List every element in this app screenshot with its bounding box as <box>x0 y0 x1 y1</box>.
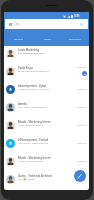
staticText: 10:20 PM <box>77 178 87 181</box>
staticText: Misaki - Marketing Intern <box>18 120 51 124</box>
staticText: You: http://media.tenor.co <box>18 105 48 108</box>
staticText: Paula Rojas <box>18 66 33 70</box>
staticText: 10:20 PM <box>77 142 87 145</box>
staticText: 10:20 PM <box>77 66 87 69</box>
staticText: You: Hello! I need some up <box>18 141 48 144</box>
staticText: CHATS <box>44 38 51 41</box>
staticText: Quinn - Technical Architect <box>18 174 53 178</box>
button[interactable]: #development - Zybar <box>4 80 89 98</box>
button[interactable]: Compose new message <box>74 170 86 182</box>
button[interactable]: Menu <box>5 19 88 29</box>
button[interactable]: Amelia <box>4 98 89 116</box>
staticText: #Development - Forked <box>18 138 49 142</box>
button[interactable]: Misaki - Marketing Intern <box>4 152 89 170</box>
staticText: Lewis Marketing <box>18 48 40 52</box>
staticText: You: 🖼 Image <box>18 177 35 180</box>
button[interactable]: #Development - Forked <box>4 134 89 152</box>
button[interactable]: MY PINS <box>4 29 33 46</box>
staticText: In the upcoming product la <box>18 69 49 72</box>
staticText: Misaki - Marketing Intern <box>18 156 51 160</box>
staticText: CHANNELS <box>69 38 81 41</box>
staticText: Has invited you to chat <box>18 51 44 54</box>
staticText: 10:20 PM <box>77 124 87 127</box>
button[interactable]: CHATS <box>33 29 61 46</box>
staticText: So far the best feature <box>18 123 44 126</box>
staticText: #development - Zybar <box>18 84 47 88</box>
button[interactable]: Paula Rojas <box>4 62 89 80</box>
button[interactable]: CHANNELS <box>61 29 89 46</box>
staticText: 10:20 PM <box>77 106 87 109</box>
staticText: 9:30 <box>74 14 80 18</box>
button[interactable]: Misaki - Marketing Intern <box>4 116 89 134</box>
staticText: So far the best feature <box>18 159 44 162</box>
staticText: 10:20 PM <box>77 88 87 91</box>
staticText: Amelia <box>18 102 27 106</box>
staticText: I have the stats for our rece <box>18 87 49 90</box>
staticText: 10:20 PM <box>77 160 87 163</box>
staticText: Chat <box>14 22 20 26</box>
button[interactable]: Lewis Marketing <box>4 44 89 62</box>
staticText: 2 <box>84 72 86 75</box>
button[interactable]: Quinn - Technical Architect <box>4 170 89 188</box>
other: Search <box>80 23 83 26</box>
staticText: MY PINS <box>14 38 23 41</box>
